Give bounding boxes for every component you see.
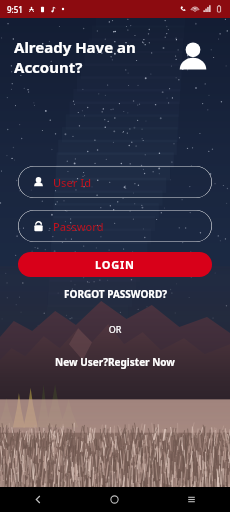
button[interactable]: New User?Register Now xyxy=(0,355,230,369)
button[interactable]: Account avatar xyxy=(172,36,214,78)
button[interactable]: User Id xyxy=(18,166,212,198)
staticText: User Id xyxy=(53,175,92,190)
button[interactable]: FORGOT PASSWORD? xyxy=(0,287,230,301)
staticText: Already Have an Account? xyxy=(14,37,136,77)
staticText: Password xyxy=(53,219,104,234)
button[interactable]: Recent apps xyxy=(153,487,230,512)
button[interactable]: LOGIN xyxy=(18,252,212,277)
button[interactable]: Back xyxy=(0,487,76,512)
staticText: New User?Register Now xyxy=(55,355,175,369)
button[interactable]: Password xyxy=(18,210,212,242)
staticText: LOGIN xyxy=(95,257,135,272)
button[interactable]: Home xyxy=(76,487,153,512)
staticText: 9:51 xyxy=(7,4,23,15)
staticText: OR xyxy=(0,323,230,335)
staticText: FORGOT PASSWORD? xyxy=(64,287,167,301)
